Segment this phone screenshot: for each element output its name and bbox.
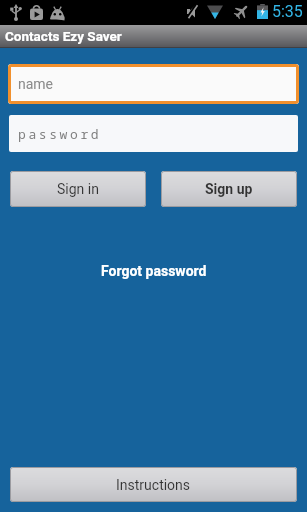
button[interactable]: password (9, 115, 298, 152)
staticText: Sign in (57, 181, 99, 197)
button[interactable]: Forgot password (0, 263, 307, 279)
button[interactable]: Sign in (10, 171, 146, 207)
staticText: name (18, 76, 54, 92)
button[interactable]: name (8, 64, 299, 104)
button[interactable]: Instructions (10, 467, 297, 502)
staticText: Instructions (116, 477, 191, 493)
staticText: password (18, 125, 102, 143)
button[interactable]: Sign up (161, 171, 297, 207)
staticText: 5:35 (272, 2, 303, 21)
staticText: Contacts Ezy Saver (5, 28, 122, 44)
staticText: Forgot password (101, 263, 207, 279)
staticText: Sign up (205, 181, 253, 197)
